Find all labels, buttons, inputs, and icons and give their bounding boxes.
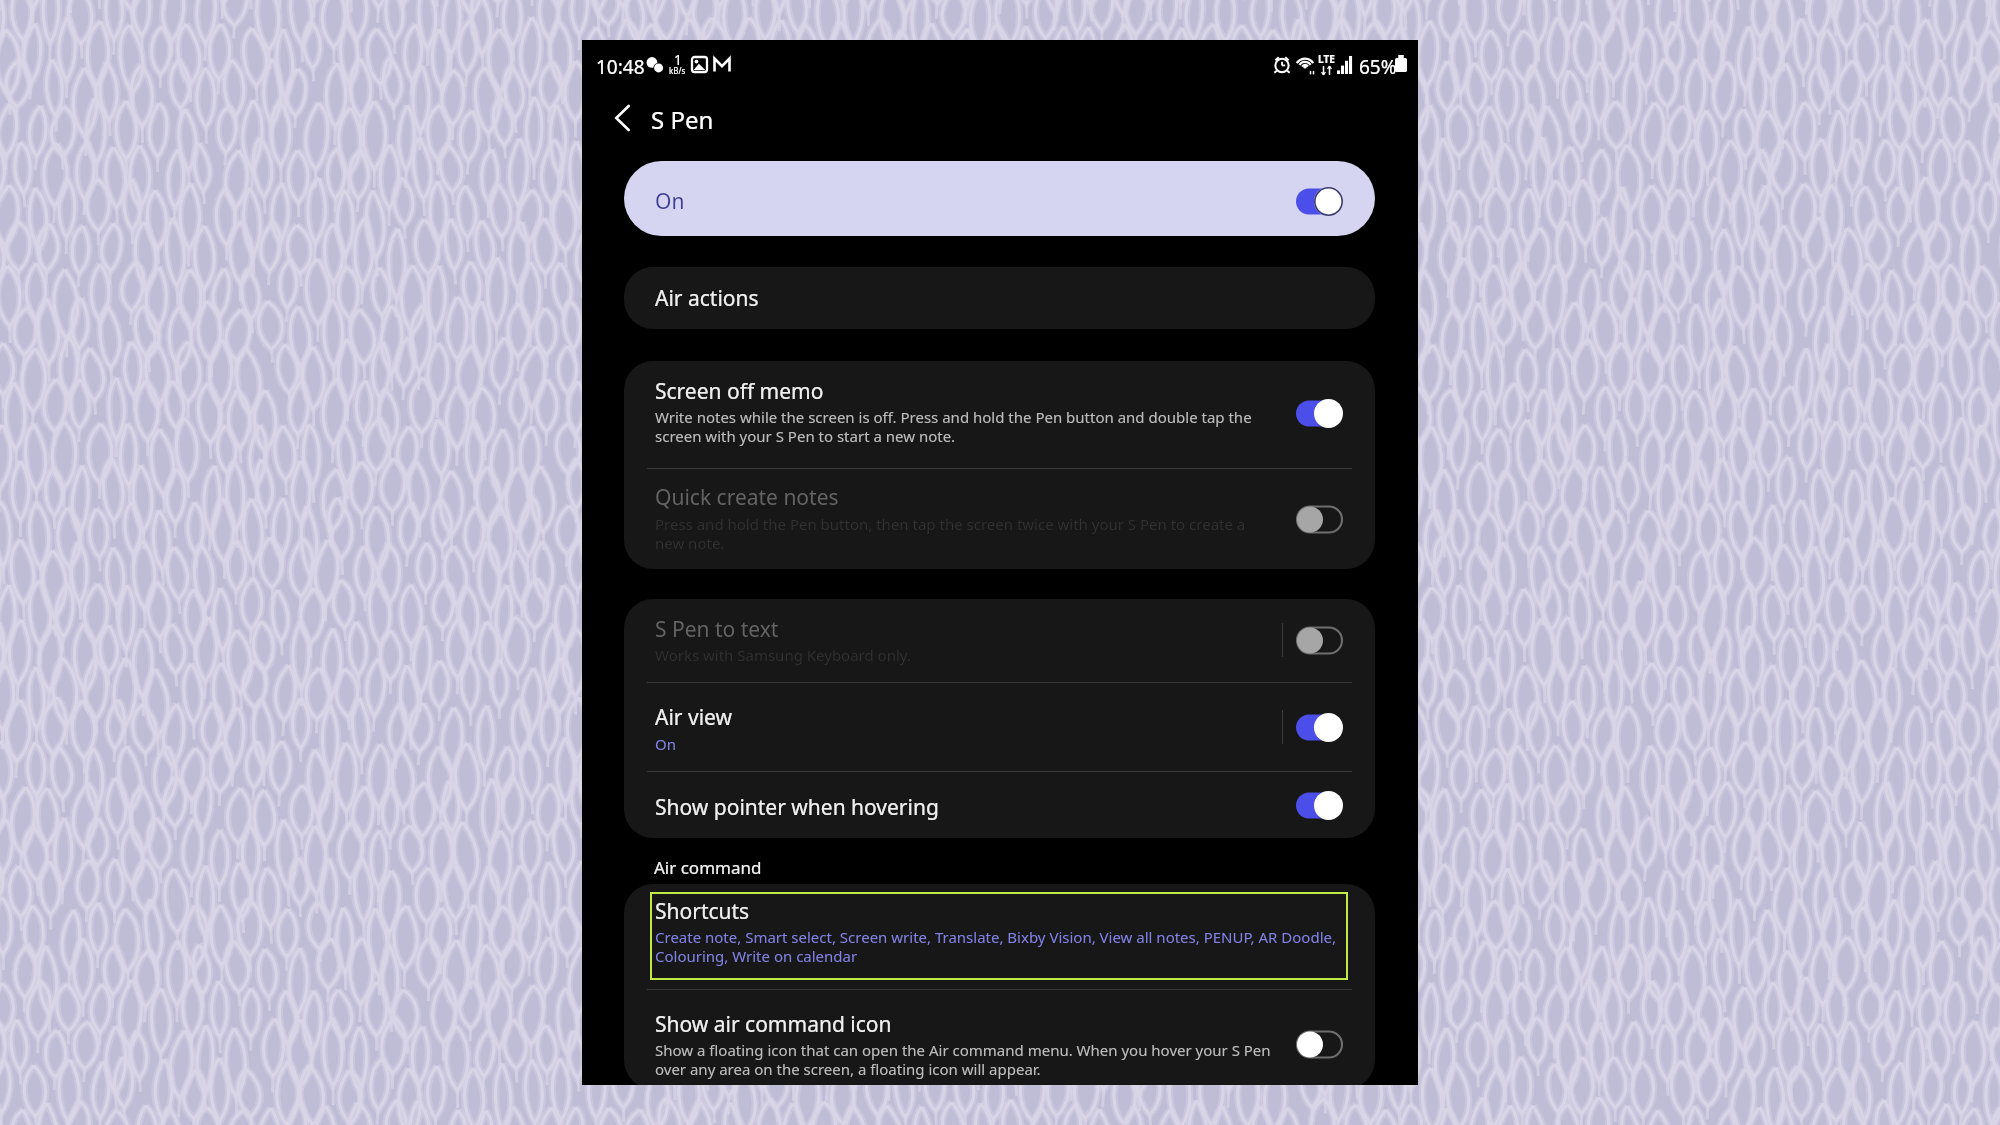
staticText: On [655, 734, 676, 754]
button[interactable]: Air view, on [1296, 713, 1343, 742]
button[interactable]: Screen off memo [624, 361, 1375, 468]
staticText: LTE [1318, 52, 1335, 66]
button[interactable]: Air view [624, 683, 1375, 771]
button[interactable]: On [624, 161, 1375, 236]
staticText: 1 [674, 50, 683, 69]
staticText: Shortcuts [655, 897, 750, 926]
staticText: Works with Samsung Keyboard only. [655, 645, 911, 665]
button[interactable]: Air actions [624, 267, 1375, 329]
button[interactable]: Quick create notes, off [1296, 505, 1343, 534]
staticText: Show air command icon [655, 1010, 892, 1039]
button[interactable]: S Pen, on [1296, 187, 1343, 216]
staticText: Show pointer when hovering [655, 793, 939, 822]
button[interactable]: S Pen to text [624, 599, 1375, 682]
staticText: Press and hold the Pen button, then tap … [655, 514, 1260, 553]
staticText: S Pen to text [655, 615, 779, 644]
staticText: Create note, Smart select, Screen write,… [655, 927, 1347, 966]
button[interactable]: Show pointer when hovering [624, 772, 1375, 838]
staticText: Air view [655, 703, 732, 732]
staticText: On [655, 187, 685, 216]
button[interactable]: S Pen to text, off [1296, 626, 1343, 655]
button[interactable]: Quick create notes [624, 469, 1375, 569]
staticText: Show a floating icon that can open the A… [655, 1040, 1285, 1079]
button[interactable]: Show pointer when hovering, on [1296, 791, 1343, 820]
staticText: Write notes while the screen is off. Pre… [655, 407, 1270, 446]
staticText: 65% [1359, 54, 1397, 80]
staticText: 10:48 [596, 54, 645, 80]
button[interactable]: Back [599, 94, 647, 142]
button[interactable]: Shortcuts [650, 892, 1348, 980]
staticText: Air actions [655, 284, 759, 313]
staticText: Quick create notes [655, 483, 839, 512]
button[interactable]: Show air command icon, off [1296, 1030, 1343, 1059]
staticText: kB/s [669, 65, 686, 76]
button[interactable]: Screen off memo, on [1296, 399, 1343, 428]
staticText: S Pen [651, 103, 714, 136]
staticText: Air command [654, 856, 762, 879]
button[interactable]: Show air command icon [624, 990, 1375, 1085]
staticText: Screen off memo [655, 377, 824, 406]
